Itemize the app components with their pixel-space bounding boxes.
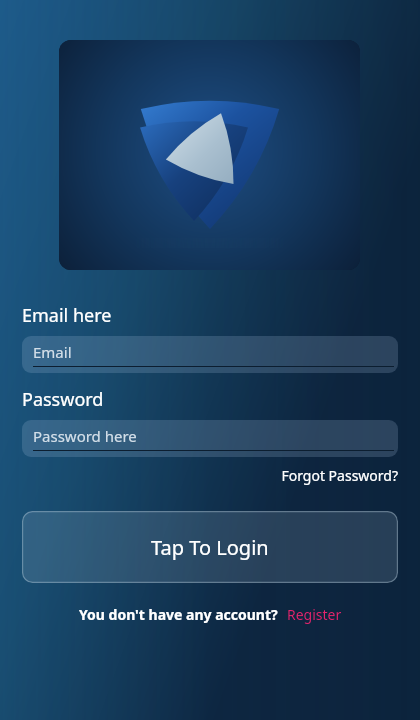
staticText: Tap To Login [151,534,269,561]
staticText: You don't have any account? [79,605,278,624]
button[interactable]: Register [287,605,342,624]
button[interactable]: Password input [22,420,398,457]
staticText: Email here [22,303,112,328]
staticText: Password [22,387,104,412]
staticText: Password here [33,426,137,446]
button[interactable]: Tap To Login [22,511,398,583]
button[interactable]: Email input [22,336,398,373]
staticText: Email [33,342,72,362]
button[interactable]: Forgot Password? [281,466,398,485]
